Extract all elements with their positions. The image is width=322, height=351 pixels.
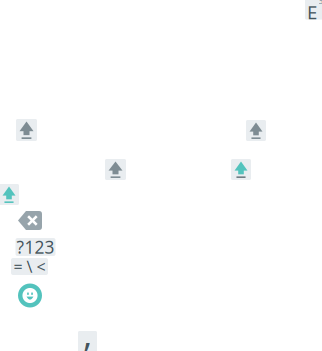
staticText: ?123 [16, 235, 54, 258]
staticText: , [83, 311, 92, 351]
button[interactable]: Shift [105, 159, 126, 180]
button[interactable]: Emoji [18, 283, 42, 307]
button[interactable]: Delete [18, 211, 42, 230]
button[interactable]: Shift [246, 120, 266, 141]
button[interactable]: Shift [16, 119, 37, 141]
button[interactable]: ?123 [15, 238, 55, 256]
button[interactable]: E [305, 0, 322, 20]
button[interactable]: Shift enabled [231, 159, 251, 180]
staticText: 3 [318, 0, 322, 6]
staticText: = \ < [13, 256, 45, 277]
button[interactable]: Caps lock [0, 184, 19, 205]
button[interactable]: Comma [78, 342, 97, 351]
button[interactable]: = \ < [11, 258, 48, 275]
staticText: E [307, 0, 317, 24]
